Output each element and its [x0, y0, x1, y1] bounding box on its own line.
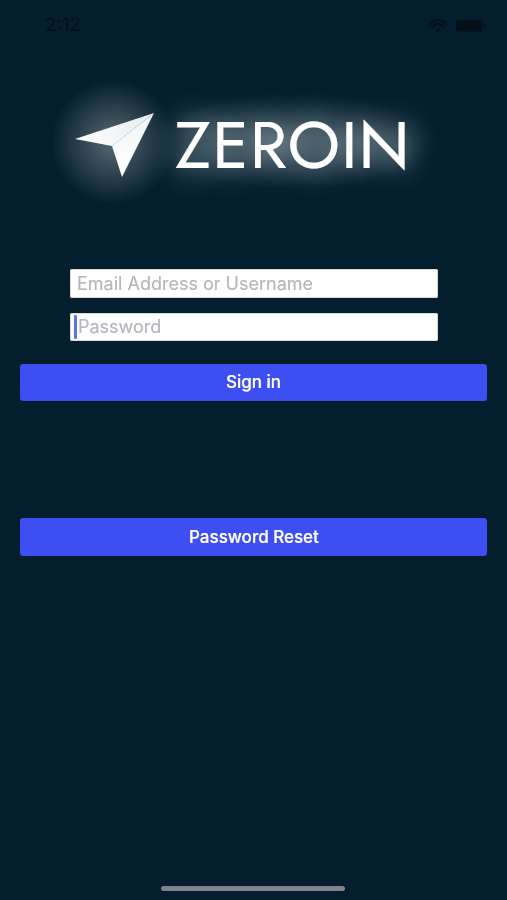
staticText: ZEROIN [175, 97, 411, 192]
button[interactable]: Email Address or Username [70, 269, 438, 298]
staticText: Email Address or Username [77, 273, 314, 295]
staticText: Password Reset [189, 527, 319, 548]
staticText: 2:12 [45, 14, 81, 36]
button[interactable]: Password Reset [20, 518, 487, 556]
button[interactable]: Sign in [20, 364, 487, 401]
staticText: Sign in [226, 372, 282, 393]
staticText: Password [78, 316, 162, 338]
button[interactable]: Password [70, 313, 438, 341]
